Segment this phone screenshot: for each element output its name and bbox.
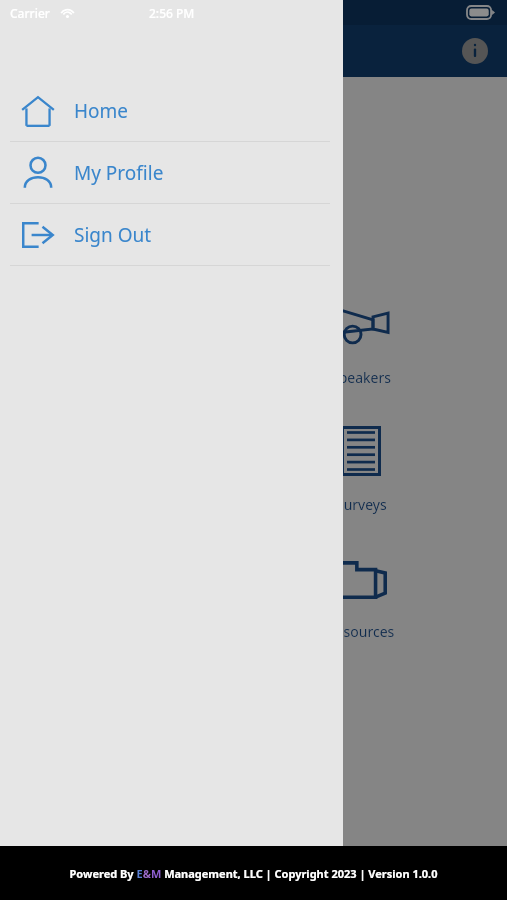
staticText: My Profile	[74, 160, 164, 186]
button[interactable]: Sign Out	[0, 204, 343, 265]
staticText: Add a widget.	[190, 127, 287, 147]
button[interactable]: Home	[0, 80, 343, 141]
staticText: Sign Out	[74, 222, 152, 248]
button[interactable]: Information	[455, 31, 495, 71]
staticText: Carrier	[10, 5, 50, 21]
button[interactable]	[0, 0, 507, 846]
button[interactable]: Surveys	[291, 419, 431, 514]
button[interactable]: My Profile	[0, 142, 343, 203]
staticText: Resources	[327, 622, 395, 641]
button[interactable]: Speakers	[291, 292, 431, 387]
staticText: 2:56 PM	[149, 5, 195, 21]
staticText: Home	[74, 98, 129, 124]
staticText: Speakers	[331, 368, 391, 387]
staticText: Surveys	[336, 495, 387, 514]
staticText: Powered By E&M Management, LLC | Copyrig…	[69, 866, 438, 881]
button[interactable]: Resources	[291, 546, 431, 641]
